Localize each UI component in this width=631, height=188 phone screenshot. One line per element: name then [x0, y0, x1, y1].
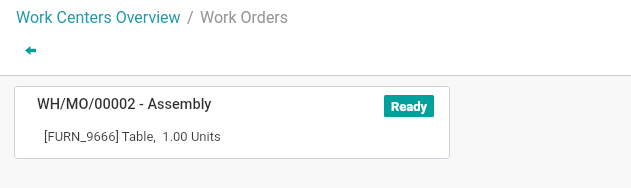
staticText: WH/MO/00002 - Assembly — [37, 96, 212, 113]
button[interactable]: Work Centers Overview — [16, 8, 181, 27]
staticText: / — [187, 8, 194, 27]
staticText: Work Orders — [200, 8, 289, 27]
staticText: Ready — [391, 99, 428, 114]
staticText: [FURN_9666] Table, 1.00 Units — [44, 129, 221, 144]
button[interactable]: Back — [18, 38, 42, 62]
button[interactable]: WH/MO/00002 - Assembly — [14, 86, 450, 159]
